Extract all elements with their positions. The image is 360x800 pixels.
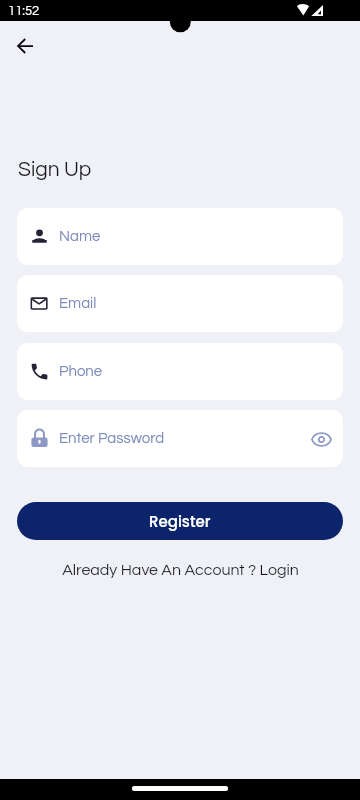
button[interactable]: Name <box>17 208 343 265</box>
button[interactable]: Enter Password <box>17 410 343 467</box>
staticText: Enter Password <box>59 431 165 446</box>
staticText: Name <box>59 229 101 244</box>
staticText: 11:52 <box>8 4 40 17</box>
button[interactable]: Phone <box>17 343 343 400</box>
staticText: Sign Up <box>18 159 92 181</box>
button[interactable]: Register <box>17 502 343 540</box>
button[interactable]: Back <box>7 27 44 64</box>
staticText: Phone <box>59 364 103 379</box>
staticText: Email <box>59 296 97 311</box>
staticText: Already Have An Account ? Login <box>62 562 299 578</box>
button[interactable]: Show password <box>301 419 341 459</box>
staticText: Register <box>149 511 211 532</box>
button[interactable]: Already Have An Account ? Login <box>54 560 307 580</box>
button[interactable]: Email <box>17 275 343 332</box>
